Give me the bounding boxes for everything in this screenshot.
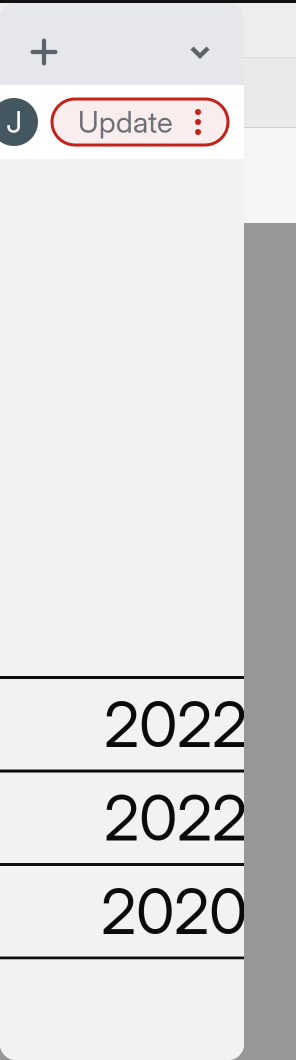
button[interactable]: New: [0, 3, 88, 85]
staticText: 2022: [104, 686, 247, 762]
staticText: Update: [78, 104, 173, 140]
button[interactable]: Update: [52, 99, 228, 145]
button[interactable]: Collapse: [156, 3, 244, 85]
staticText: 2020: [101, 873, 247, 949]
staticText: J: [6, 104, 22, 140]
staticText: 2022: [104, 780, 247, 856]
